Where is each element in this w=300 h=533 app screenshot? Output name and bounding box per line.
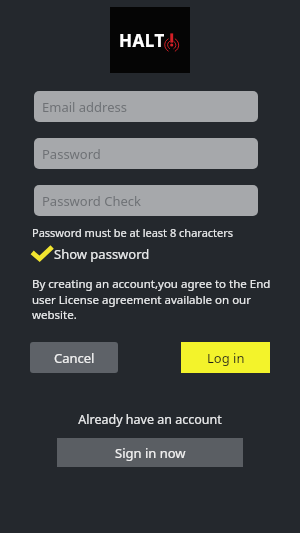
button[interactable]: Password Check <box>34 185 258 216</box>
staticText: Cancel <box>54 349 95 367</box>
staticText: Password Check <box>42 192 141 210</box>
staticText: Email address <box>42 98 127 116</box>
button[interactable]: Password <box>34 138 258 169</box>
staticText: By creating an account,you agree to the … <box>32 276 272 322</box>
button[interactable]: Log in <box>181 342 270 373</box>
button[interactable]: Sign in now <box>57 438 243 467</box>
staticText: Password <box>42 145 101 163</box>
button[interactable]: Cancel <box>30 342 118 373</box>
staticText: HALT <box>119 29 165 52</box>
staticText: Sign in now <box>115 444 186 462</box>
staticText: Password must be at least 8 characters <box>32 225 234 240</box>
button[interactable]: Email address <box>34 91 258 122</box>
button[interactable]: Show password <box>32 245 150 263</box>
staticText: Log in <box>207 349 245 367</box>
staticText: Show password <box>54 245 150 263</box>
staticText: Already have an account <box>78 411 222 428</box>
